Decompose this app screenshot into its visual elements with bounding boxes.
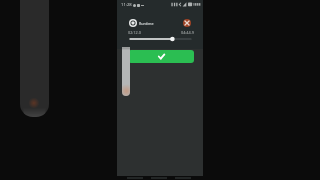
button[interactable]: Stop (183, 19, 191, 27)
staticText: 11:28 (121, 2, 132, 8)
staticText: 02:12.0 (128, 30, 141, 35)
staticText: Runtime (139, 21, 154, 26)
staticText: 04:44.9 (181, 30, 194, 35)
button[interactable]: Confirm (128, 50, 194, 63)
